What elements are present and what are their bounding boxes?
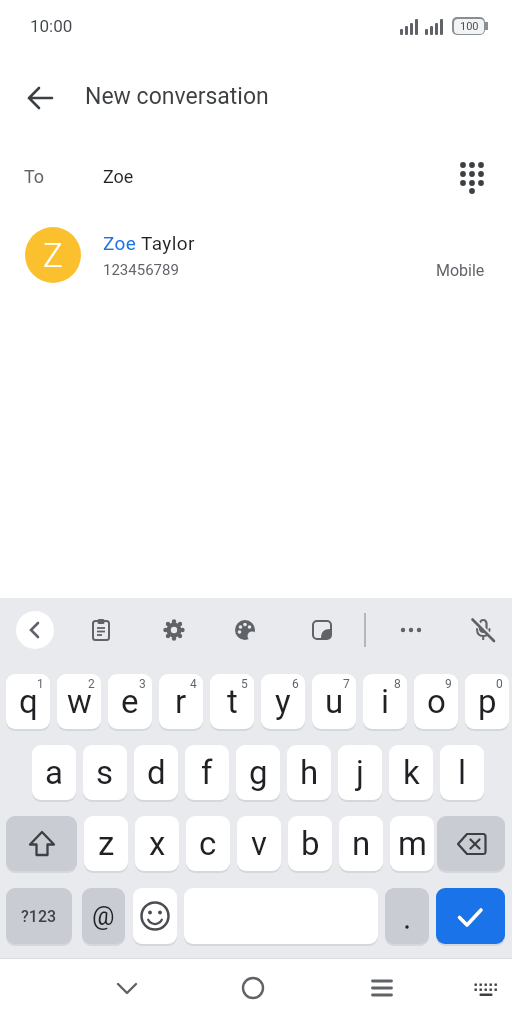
staticText: 0: [496, 677, 503, 691]
button[interactable]: s: [83, 745, 127, 800]
button[interactable]: [465, 970, 505, 1010]
staticText: ?123: [21, 907, 57, 926]
staticText: x: [149, 824, 166, 863]
staticText: w: [67, 682, 92, 721]
button[interactable]: @: [82, 888, 125, 944]
staticText: s: [96, 753, 114, 792]
button[interactable]: i: [363, 674, 407, 729]
staticText: m: [398, 824, 427, 863]
staticText: 2: [88, 677, 95, 691]
staticText: c: [199, 824, 217, 863]
button[interactable]: g: [236, 745, 280, 800]
staticText: @: [92, 902, 115, 931]
staticText: i: [381, 682, 390, 721]
staticText: 9: [445, 677, 452, 691]
staticText: j: [356, 753, 364, 792]
staticText: To: [24, 166, 45, 187]
button[interactable]: r: [159, 674, 203, 729]
staticText: 10:00: [30, 16, 73, 36]
staticText: 7: [343, 677, 350, 691]
staticText: h: [300, 753, 319, 792]
button[interactable]: f: [185, 745, 229, 800]
button[interactable]: l: [440, 745, 484, 800]
button[interactable]: [159, 615, 189, 645]
staticText: 1: [37, 677, 44, 691]
button[interactable]: [437, 816, 505, 871]
button[interactable]: k: [389, 745, 433, 800]
button[interactable]: e: [108, 674, 152, 729]
staticText: 4: [190, 677, 197, 691]
button[interactable]: [385, 888, 429, 944]
staticText: 5: [241, 677, 248, 691]
button[interactable]: a: [32, 745, 76, 800]
button[interactable]: [107, 968, 147, 1008]
button[interactable]: n: [339, 816, 383, 871]
staticText: Zoe Taylor: [103, 232, 195, 254]
staticText: g: [249, 753, 268, 792]
staticText: u: [325, 682, 344, 721]
button[interactable]: b: [288, 816, 332, 871]
button[interactable]: j: [338, 745, 382, 800]
button[interactable]: u: [312, 674, 356, 729]
staticText: t: [227, 682, 238, 721]
staticText: v: [251, 824, 267, 863]
button[interactable]: [307, 615, 337, 645]
button[interactable]: [6, 816, 77, 871]
button[interactable]: o: [414, 674, 458, 729]
button[interactable]: v: [237, 816, 281, 871]
button[interactable]: h: [287, 745, 331, 800]
button[interactable]: w: [57, 674, 101, 729]
staticText: n: [352, 824, 371, 863]
button[interactable]: y: [261, 674, 305, 729]
button[interactable]: [468, 615, 498, 645]
button[interactable]: c: [186, 816, 230, 871]
staticText: 3: [139, 677, 146, 691]
button[interactable]: p: [465, 674, 509, 729]
button[interactable]: m: [390, 816, 434, 871]
button[interactable]: [16, 611, 54, 649]
button[interactable]: [16, 74, 64, 122]
staticText: p: [478, 682, 497, 721]
staticText: d: [147, 753, 166, 792]
button[interactable]: q: [6, 674, 50, 729]
staticText: 123456789: [103, 261, 179, 279]
staticText: 8: [394, 677, 401, 691]
staticText: l: [458, 753, 467, 792]
staticText: z: [98, 824, 115, 863]
button[interactable]: [133, 888, 177, 944]
button[interactable]: [86, 615, 116, 645]
staticText: New conversation: [85, 83, 269, 110]
button[interactable]: t: [210, 674, 254, 729]
button[interactable]: [396, 615, 426, 645]
staticText: 6: [292, 677, 299, 691]
staticText: f: [201, 753, 213, 792]
staticText: Z: [43, 236, 63, 275]
staticText: 100: [460, 20, 479, 33]
staticText: e: [121, 682, 139, 721]
staticText: q: [19, 682, 38, 721]
button[interactable]: [362, 968, 402, 1008]
button[interactable]: ?123: [6, 888, 72, 944]
staticText: o: [427, 682, 446, 721]
button[interactable]: [436, 888, 505, 944]
staticText: y: [275, 682, 291, 721]
button[interactable]: [233, 968, 273, 1008]
button[interactable]: [451, 155, 493, 197]
button[interactable]: z: [84, 816, 128, 871]
button[interactable]: [0, 218, 512, 292]
staticText: k: [403, 753, 420, 792]
button[interactable]: d: [134, 745, 178, 800]
staticText: Zoe: [103, 166, 134, 187]
button[interactable]: [230, 615, 260, 645]
staticText: a: [45, 753, 63, 792]
staticText: r: [175, 682, 187, 721]
button[interactable]: Z: [25, 227, 81, 283]
staticText: Mobile: [436, 261, 485, 280]
button[interactable]: x: [135, 816, 179, 871]
staticText: b: [301, 824, 320, 863]
